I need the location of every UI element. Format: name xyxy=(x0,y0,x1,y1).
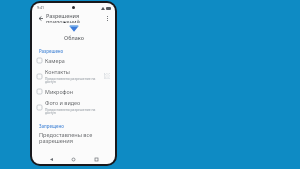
staticText: Разрешено xyxy=(39,48,64,54)
staticText: Камера xyxy=(45,57,65,64)
staticText: Контакты xyxy=(45,68,70,75)
button[interactable]: Последние приложения xyxy=(93,156,100,163)
staticText: Облако xyxy=(64,34,84,41)
staticText: Предоставлено разрешение на доступ xyxy=(45,107,96,115)
staticText: Запрещено xyxy=(39,123,64,129)
button[interactable]: Фото и видео xyxy=(32,97,115,117)
staticText: Разрешения приложений xyxy=(46,12,103,23)
button[interactable]: Контакты xyxy=(32,66,115,86)
button[interactable]: Ещё xyxy=(103,14,111,22)
button[interactable]: Камера xyxy=(32,55,115,66)
staticText: Предоставлены все разрешения xyxy=(39,131,93,145)
button[interactable]: Микрофон xyxy=(32,86,115,97)
staticText: Фото и видео xyxy=(45,99,81,106)
button[interactable]: Назад xyxy=(36,14,44,22)
button[interactable]: Главный экран xyxy=(70,156,77,163)
staticText: Предоставлено разрешение на доступ xyxy=(45,76,96,84)
button[interactable]: Назад xyxy=(48,156,55,163)
staticText: 9:41 xyxy=(37,5,45,10)
staticText: Микрофон xyxy=(45,88,74,95)
